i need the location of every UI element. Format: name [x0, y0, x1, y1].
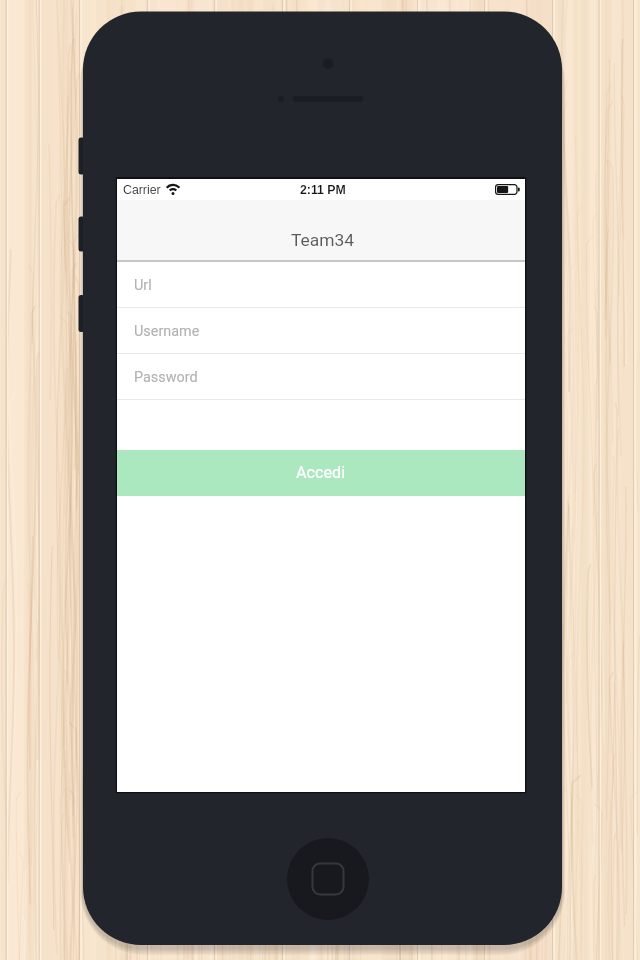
- button[interactable]: Password: [117, 354, 525, 400]
- button[interactable]: Accedi: [117, 450, 525, 496]
- staticText: Password: [134, 369, 198, 386]
- button[interactable]: Url: [117, 262, 525, 308]
- staticText: Username: [134, 323, 200, 340]
- staticText: Team34: [291, 230, 355, 250]
- staticText: Url: [134, 277, 152, 294]
- staticText: 2:11 PM: [300, 183, 346, 197]
- staticText: Accedi: [296, 463, 346, 482]
- other: Wi-Fi signal: [166, 183, 180, 197]
- button[interactable]: Home: [287, 838, 369, 920]
- other: Battery level: [495, 184, 520, 195]
- button[interactable]: Username: [117, 308, 525, 354]
- staticText: Carrier: [123, 183, 161, 197]
